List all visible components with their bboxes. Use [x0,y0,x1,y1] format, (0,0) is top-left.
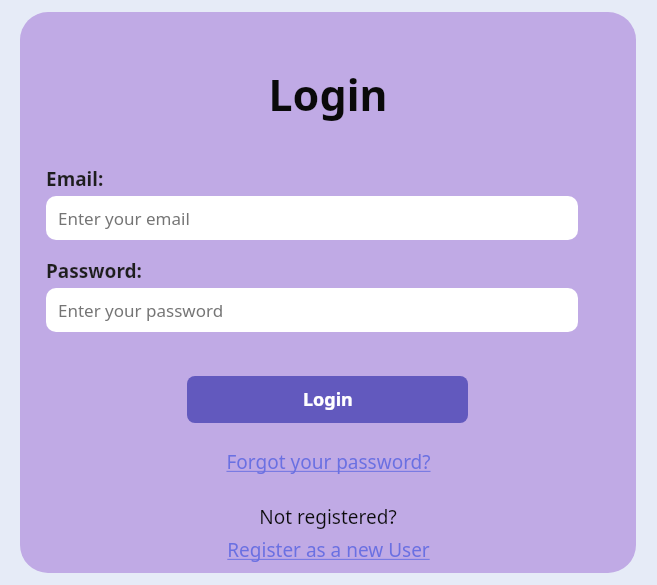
staticText: Enter your password [58,299,224,322]
staticText: Enter your email [58,207,190,230]
staticText: Password: [46,258,142,284]
button[interactable]: Login [187,376,468,423]
staticText: Login [303,387,353,412]
staticText: Email: [46,166,104,192]
button[interactable]: Enter your email [46,196,578,240]
button[interactable]: Enter your password [46,288,578,332]
button[interactable]: Register as a new User [227,537,430,563]
staticText: Not registered? [259,504,397,530]
button[interactable]: Forgot your password? [226,449,431,475]
staticText: Login [20,65,636,124]
